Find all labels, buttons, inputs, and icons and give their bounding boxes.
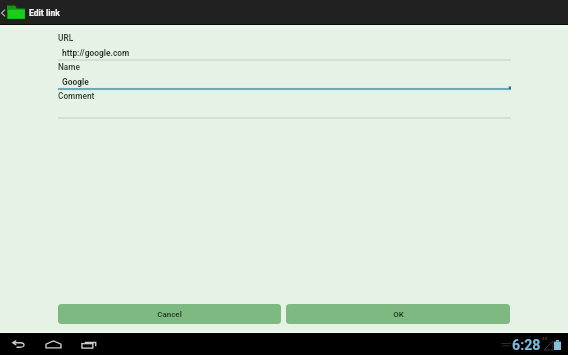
staticText: Edit link [29,8,60,18]
staticText: Google [62,77,89,87]
button[interactable]: Home [40,336,66,352]
button[interactable]: Recent apps [76,336,102,352]
staticText: 6:28 [512,337,541,354]
button[interactable]: Name field [58,61,511,90]
button[interactable]: Comment field [58,90,511,119]
staticText: 3G [542,336,548,341]
staticText: Cancel [157,310,182,319]
button[interactable]: OK [286,304,510,324]
staticText: Comment [58,91,95,101]
button[interactable]: Cancel [58,304,281,324]
staticText: OK [393,310,404,319]
button[interactable]: Back [5,336,31,352]
staticText: http://google.com [62,48,130,58]
button[interactable]: URL field [58,32,511,61]
button[interactable]: Edit link [0,0,66,25]
staticText: Name [58,62,80,72]
staticText: URL [58,33,74,43]
